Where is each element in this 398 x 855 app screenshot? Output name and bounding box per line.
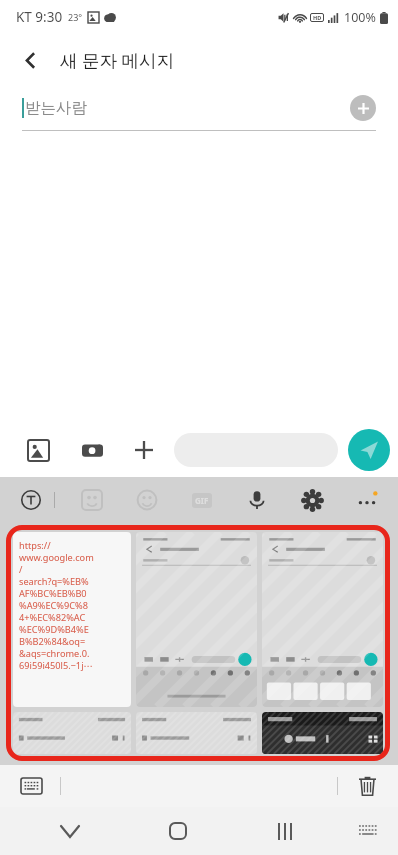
button[interactable] (262, 532, 383, 707)
button[interactable]: Settings (295, 483, 329, 517)
button[interactable]: Back (8, 38, 52, 82)
staticText: 받는사람 (25, 98, 87, 118)
button[interactable]: More (350, 483, 384, 517)
button[interactable]: Translate (14, 483, 48, 517)
button[interactable]: Attach image (22, 434, 54, 466)
button[interactable]: Recent apps (231, 807, 338, 855)
staticText: https:// www.google.com / search?q=%EB% … (19, 539, 94, 671)
button[interactable]: Stickers (75, 483, 109, 517)
button[interactable] (174, 433, 338, 467)
button[interactable] (262, 712, 383, 754)
button[interactable]: Keyboard switcher (338, 807, 398, 855)
button[interactable]: More options (128, 434, 160, 466)
button[interactable]: GIF (185, 483, 219, 517)
button[interactable]: Add recipient (350, 95, 376, 121)
staticText: 새 문자 메시지 (60, 48, 175, 72)
button[interactable]: Hide keyboard (16, 807, 124, 855)
staticText: 100% (344, 9, 376, 26)
button[interactable]: Send (348, 429, 390, 471)
button[interactable]: 받는사람 (0, 86, 398, 130)
staticText: 23° (68, 11, 83, 23)
button[interactable]: Keyboard (16, 771, 46, 801)
staticText: KT 9:30 (16, 8, 63, 26)
button[interactable] (13, 712, 131, 754)
button[interactable]: Camera (76, 434, 108, 466)
staticText: GIF (195, 495, 209, 506)
button[interactable]: Delete (352, 771, 382, 801)
button[interactable] (136, 712, 257, 754)
button[interactable]: Voice input (240, 483, 274, 517)
staticText: HD (313, 14, 322, 21)
button[interactable]: https:// www.google.com / search?q=%EB% … (13, 532, 131, 707)
button[interactable]: Emoji (130, 483, 164, 517)
button[interactable] (136, 532, 257, 707)
button[interactable]: Home (124, 807, 231, 855)
